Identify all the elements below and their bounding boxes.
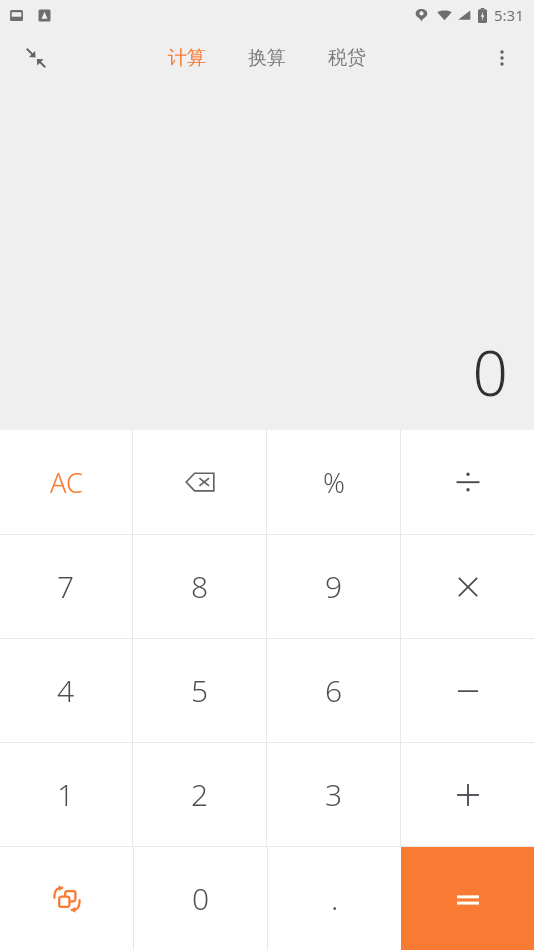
staticText: 8 — [191, 566, 209, 607]
staticText: 6 — [325, 670, 343, 711]
staticText: 0 — [192, 878, 210, 919]
staticText: 3 — [325, 774, 343, 815]
button[interactable]: 5 — [133, 639, 266, 742]
staticText: 2 — [191, 774, 209, 815]
button[interactable] — [401, 743, 534, 846]
button[interactable]: 计算 — [164, 38, 210, 78]
button[interactable]: 换算 — [244, 38, 290, 78]
button[interactable]: AC — [0, 430, 132, 534]
button[interactable]: 0 — [134, 847, 267, 950]
button[interactable]: Backspace — [133, 430, 266, 534]
button[interactable]: Collapse — [12, 34, 60, 82]
button[interactable]: 7 — [0, 535, 132, 638]
staticText: 9 — [325, 566, 343, 607]
button[interactable]: 9 — [267, 535, 400, 638]
staticText: 税贷 — [328, 46, 366, 70]
staticText: 5:31 — [494, 5, 524, 25]
staticText: 4 — [57, 670, 75, 711]
staticText: % — [323, 464, 345, 501]
button[interactable]: . — [268, 847, 401, 950]
button[interactable]: 3 — [267, 743, 400, 846]
button[interactable]: 税贷 — [324, 38, 370, 78]
button[interactable]: 2 — [133, 743, 266, 846]
staticText: 7 — [57, 566, 75, 607]
button[interactable]: 4 — [0, 639, 132, 742]
staticText: 0 — [472, 330, 508, 414]
button[interactable]: Convert — [0, 847, 133, 950]
button[interactable] — [401, 535, 534, 638]
button[interactable]: 1 — [0, 743, 132, 846]
staticText: AC — [50, 464, 83, 501]
staticText: 计算 — [168, 46, 206, 70]
staticText: 1 — [57, 774, 75, 815]
staticText: . — [331, 878, 339, 919]
button[interactable]: More options — [478, 34, 526, 82]
staticText: 换算 — [248, 46, 286, 70]
button[interactable]: Equals — [401, 847, 534, 950]
button[interactable] — [401, 639, 534, 742]
button[interactable]: 8 — [133, 535, 266, 638]
button[interactable] — [401, 430, 534, 534]
button[interactable]: % — [267, 430, 400, 534]
staticText: 5 — [191, 670, 209, 711]
button[interactable]: 6 — [267, 639, 400, 742]
